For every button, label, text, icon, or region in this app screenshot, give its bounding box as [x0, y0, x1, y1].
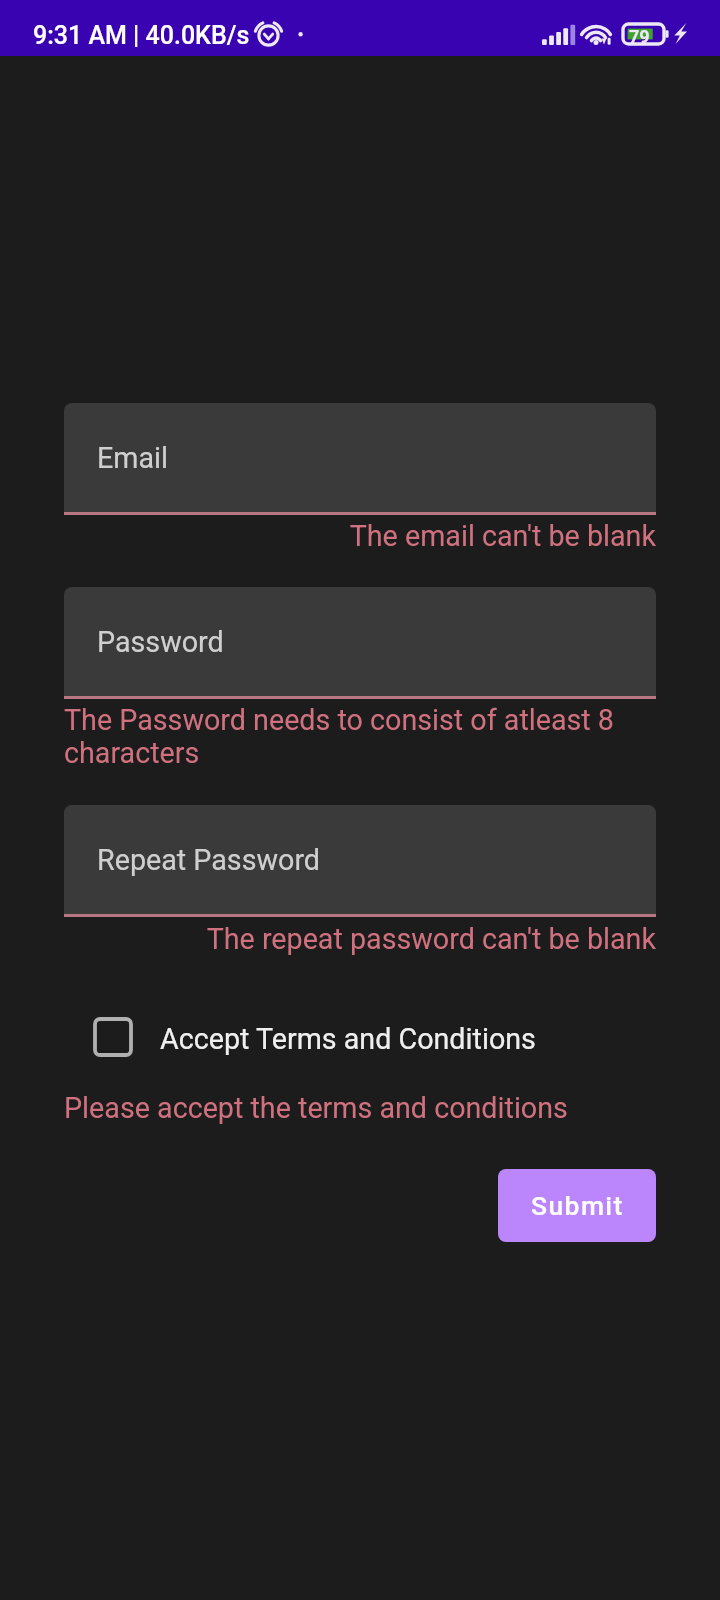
- other: Battery 79 percent: [622, 23, 670, 45]
- staticText: The Password needs to consist of atleast…: [64, 703, 656, 770]
- staticText: 79: [629, 26, 650, 47]
- button[interactable]: Password: [64, 587, 656, 696]
- button[interactable]: Accept terms checkbox: [64, 1017, 656, 1057]
- staticText: Accept Terms and Conditions: [160, 1022, 536, 1056]
- staticText: Submit: [531, 1190, 624, 1221]
- staticText: Repeat Password: [97, 843, 321, 877]
- other: Accept terms checkbox: [93, 1017, 133, 1057]
- staticText: Password: [97, 625, 224, 659]
- button[interactable]: Repeat Password: [64, 805, 656, 914]
- staticText: Please accept the terms and conditions: [64, 1091, 568, 1125]
- button[interactable]: Email: [64, 403, 656, 512]
- other: Charging: [674, 23, 688, 45]
- button[interactable]: Submit: [498, 1169, 656, 1242]
- staticText: The repeat password can't be blank: [64, 922, 656, 956]
- staticText: Email: [97, 441, 169, 475]
- other: Wi-Fi: [581, 22, 614, 47]
- staticText: The email can't be blank: [64, 519, 656, 553]
- other: Mobile signal: [542, 24, 575, 45]
- staticText: 9:31 AM | 40.0KB/s: [33, 21, 250, 50]
